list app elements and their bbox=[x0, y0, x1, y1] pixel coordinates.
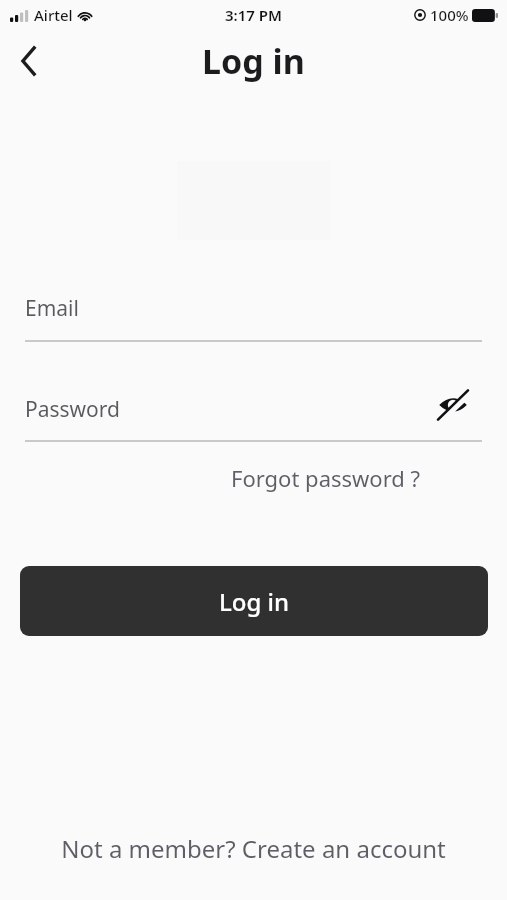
button[interactable]: Password bbox=[25, 392, 425, 426]
staticText: 3:17 PM bbox=[225, 5, 282, 25]
staticText: Not a member? Create an account bbox=[61, 832, 446, 865]
button[interactable]: Not a member? Create an account bbox=[0, 826, 507, 870]
button[interactable]: Back bbox=[6, 38, 52, 84]
button[interactable]: Forgot password ? bbox=[231, 458, 421, 498]
staticText: Log in bbox=[202, 38, 305, 84]
staticText: Password bbox=[25, 395, 120, 424]
staticText: Log in bbox=[219, 585, 290, 618]
staticText: 100% bbox=[430, 5, 469, 25]
staticText: Forgot password ? bbox=[231, 463, 421, 493]
button[interactable]: Email bbox=[25, 291, 425, 325]
staticText: Airtel bbox=[34, 5, 73, 25]
button[interactable]: Log in bbox=[20, 566, 488, 636]
button[interactable]: Show password bbox=[429, 381, 477, 429]
staticText: Email bbox=[25, 294, 79, 323]
